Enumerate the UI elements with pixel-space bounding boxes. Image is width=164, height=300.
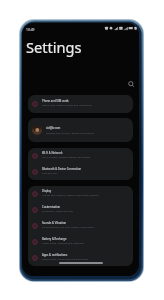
staticText: Display [42,189,52,193]
button[interactable]: Sounds & Vibration [28,218,133,234]
staticText: Wi-Fi, hotspot, mobile network, data usa… [42,155,91,158]
staticText: Bluetooth & Device Connection [42,167,82,171]
button[interactable]: Customisation [28,202,133,218]
staticText: Battery & Recharge [42,237,67,241]
staticText: Apps & notifications [42,253,68,257]
staticText: Theme, text, uniform, display, auto rota… [42,193,99,196]
staticText: Settings [26,37,82,57]
button[interactable]: Display [28,186,133,202]
button[interactable]: Wi-Fi & Network [28,148,133,164]
button[interactable]: Battery & Recharge [28,234,133,250]
staticText: Sounds & Vibration [42,221,67,225]
staticText: Customisation [42,205,61,209]
staticText: sid@kr.com [46,126,61,130]
staticText: Phone and SIM cards [42,99,69,103]
staticText: Default apps, notification and permissio… [42,257,89,260]
staticText: Wi-Fi & Network [42,151,63,155]
staticText: Power mode, charging and Superdart [42,241,85,244]
button[interactable]: Search [126,79,135,88]
staticText: Wallpapers, sound and vibe [42,209,73,212]
staticText: Cast and sync [42,171,58,174]
staticText: 10:49 [26,27,35,31]
staticText: Device data, network profile and notific… [42,103,92,106]
button[interactable]: sid@kr.com [28,118,133,142]
button[interactable]: Phone and SIM cards [28,95,133,113]
button[interactable]: Apps & notifications [28,250,133,266]
staticText: Do not disturb, ring tone, haptics, soun… [42,225,95,228]
staticText: Manage your account, privacy and securit… [46,131,95,134]
button[interactable]: Bluetooth & Device Connection [28,164,133,180]
